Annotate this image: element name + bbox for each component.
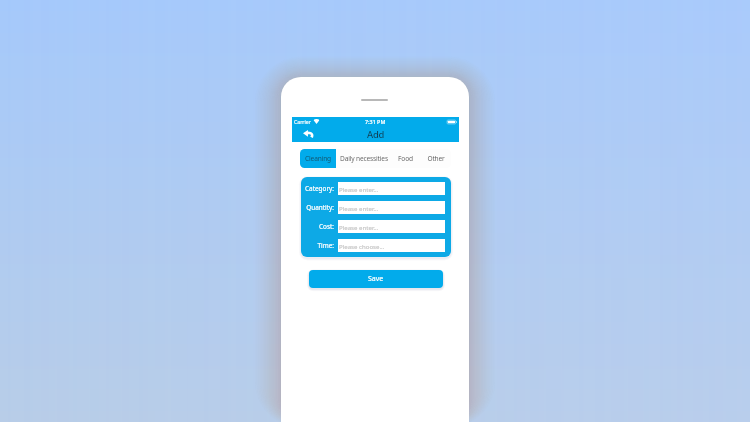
button[interactable]: Back xyxy=(299,126,317,142)
button[interactable]: Please enter... xyxy=(338,220,445,233)
button[interactable]: Please enter... xyxy=(338,182,445,195)
button[interactable]: Cleaning xyxy=(300,149,336,168)
button[interactable]: Please choose... xyxy=(338,239,445,252)
staticText: 7:31 PM xyxy=(365,118,386,125)
staticText: Please enter... xyxy=(339,223,379,231)
button[interactable]: Other xyxy=(420,149,451,168)
staticText: Please enter... xyxy=(339,185,379,193)
staticText: Carrier xyxy=(294,118,311,125)
staticText: Please enter... xyxy=(339,204,379,212)
staticText: Category: xyxy=(305,184,334,193)
button[interactable]: Save xyxy=(309,270,443,288)
staticText: Please choose... xyxy=(339,242,385,250)
staticText: Daily necessities xyxy=(340,154,388,163)
button[interactable]: Food xyxy=(391,149,420,168)
staticText: Add xyxy=(367,128,385,141)
staticText: Food xyxy=(398,154,413,163)
button[interactable]: Daily necessities xyxy=(336,149,391,168)
staticText: Cleaning xyxy=(305,154,331,163)
staticText: Time: xyxy=(317,241,334,250)
button[interactable]: Please enter... xyxy=(338,201,445,214)
staticText: Save xyxy=(368,274,384,284)
staticText: Cost: xyxy=(319,222,334,231)
staticText: Quantity: xyxy=(306,203,334,212)
staticText: Other xyxy=(427,154,445,163)
